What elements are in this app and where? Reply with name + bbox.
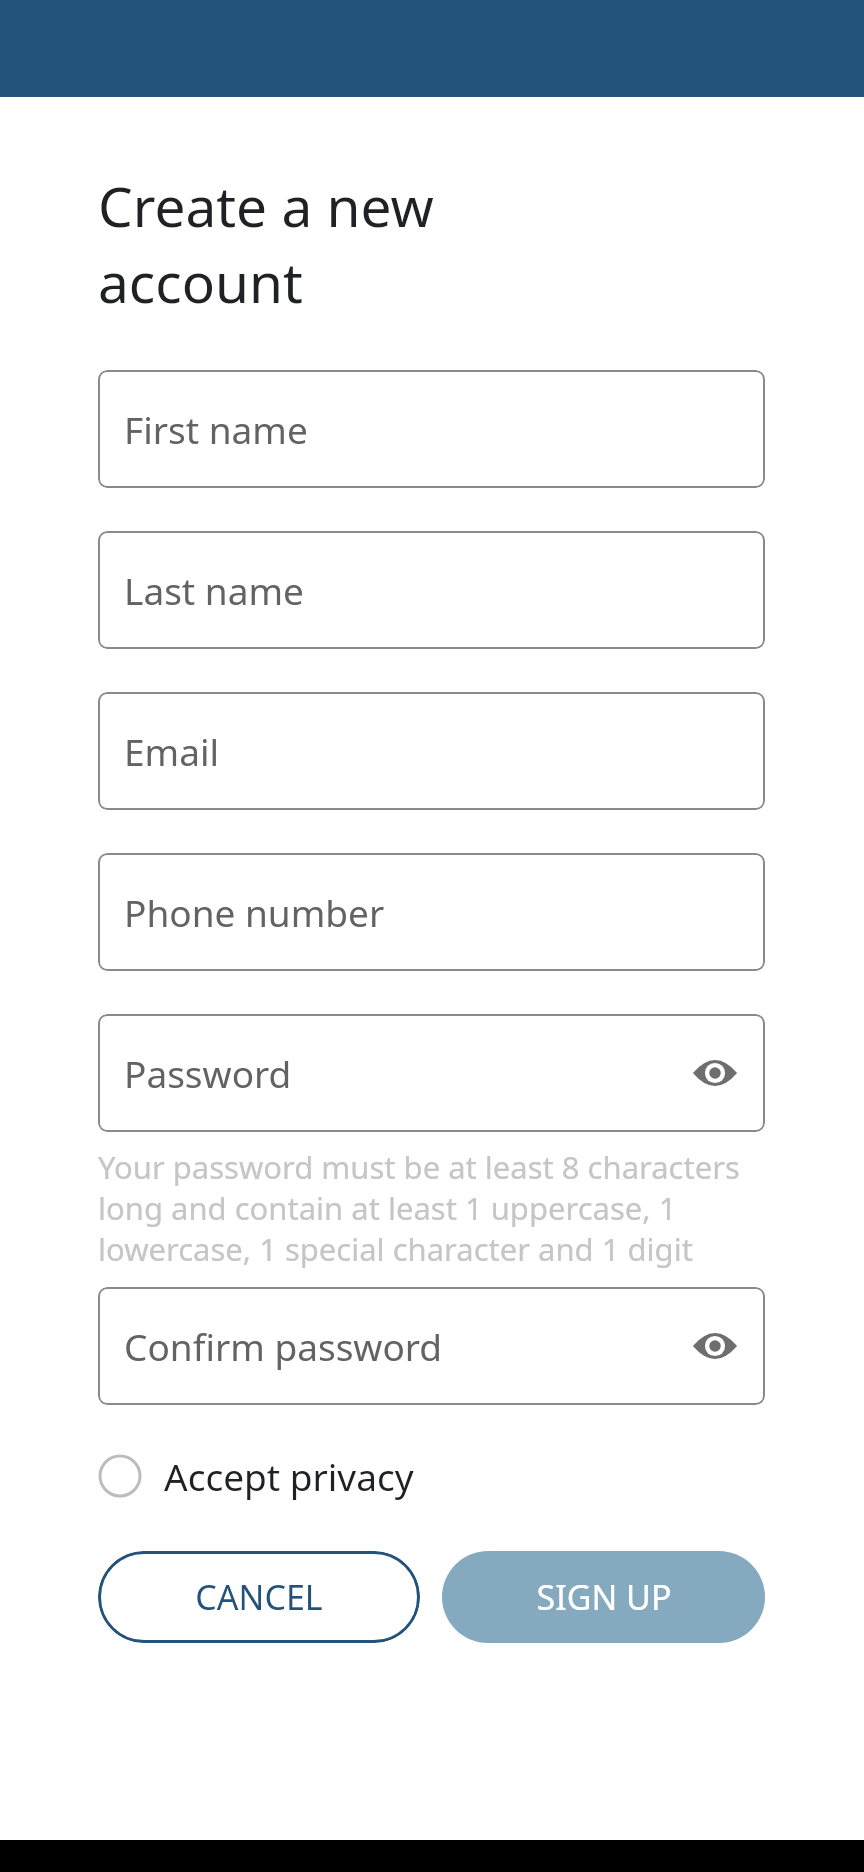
staticText: Password — [124, 1048, 292, 1098]
staticText: SIGN UP — [536, 1574, 672, 1620]
button[interactable]: SIGN UP — [442, 1551, 765, 1643]
button[interactable]: CANCEL — [98, 1551, 420, 1643]
button[interactable]: Show confirm password — [687, 1318, 743, 1374]
staticText: Email — [124, 726, 220, 776]
button[interactable]: Last name — [98, 531, 765, 649]
button[interactable]: Password — [98, 1014, 765, 1132]
button[interactable]: Phone number — [98, 853, 765, 971]
staticText: Last name — [124, 565, 304, 615]
button[interactable]: Accept privacy — [98, 1447, 414, 1505]
staticText: Accept privacy — [164, 1451, 414, 1501]
staticText: First name — [124, 404, 308, 454]
button[interactable]: Show password — [687, 1045, 743, 1101]
staticText: Your password must be at least 8 charact… — [98, 1146, 740, 1270]
button[interactable]: Email — [98, 692, 765, 810]
staticText: CANCEL — [195, 1574, 323, 1620]
button[interactable]: First name — [98, 370, 765, 488]
button[interactable]: Confirm password — [98, 1287, 765, 1405]
staticText: Create a new account — [98, 168, 434, 319]
staticText: Confirm password — [124, 1321, 443, 1371]
staticText: Phone number — [124, 887, 385, 937]
